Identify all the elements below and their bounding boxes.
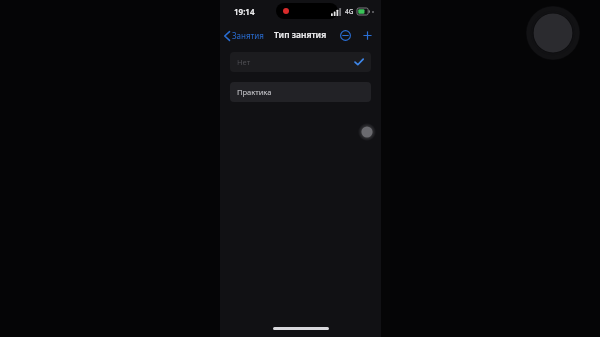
staticText: Нет bbox=[237, 57, 251, 67]
button[interactable]: AssistiveTouch bbox=[358, 123, 376, 141]
button[interactable]: Нет bbox=[230, 52, 371, 72]
staticText: Практика bbox=[237, 87, 272, 97]
staticText: 19:14 bbox=[234, 6, 255, 17]
button[interactable]: Remove bbox=[337, 27, 353, 43]
staticText: Тип занятия bbox=[274, 29, 327, 41]
staticText: Занятия bbox=[232, 30, 264, 41]
button[interactable]: Практика bbox=[230, 82, 371, 102]
staticText: 4G bbox=[345, 7, 354, 16]
other: Camera lens bbox=[526, 6, 580, 60]
button[interactable]: Занятия bbox=[220, 26, 270, 45]
button[interactable]: Add bbox=[359, 27, 375, 43]
